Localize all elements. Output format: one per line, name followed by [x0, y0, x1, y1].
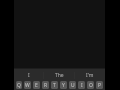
button[interactable]: T	[51, 81, 58, 89]
button[interactable]: Q	[16, 81, 22, 89]
staticText: Q	[17, 82, 21, 89]
staticText: E	[35, 82, 38, 89]
button[interactable]: I'm	[75, 69, 105, 81]
button[interactable]: W	[24, 81, 31, 89]
staticText: T	[53, 82, 56, 89]
staticText: P	[98, 82, 102, 89]
staticText: I	[28, 72, 30, 79]
button[interactable]: I	[78, 81, 85, 89]
staticText: Y	[62, 82, 65, 89]
button[interactable]: O	[87, 81, 94, 89]
staticText: O	[89, 82, 93, 89]
staticText: I'm	[86, 72, 94, 79]
button[interactable]: E	[33, 81, 40, 89]
staticText: I	[81, 82, 83, 89]
button[interactable]: U	[69, 81, 76, 89]
button[interactable]: R	[42, 81, 49, 89]
button[interactable]: Y	[60, 81, 67, 89]
button[interactable]: P	[96, 81, 103, 89]
staticText: The	[55, 72, 64, 79]
button[interactable]: I	[14, 69, 43, 81]
staticText: W	[25, 82, 30, 89]
staticText: R	[44, 82, 48, 89]
staticText: U	[71, 82, 75, 89]
button[interactable]: The	[44, 69, 74, 81]
